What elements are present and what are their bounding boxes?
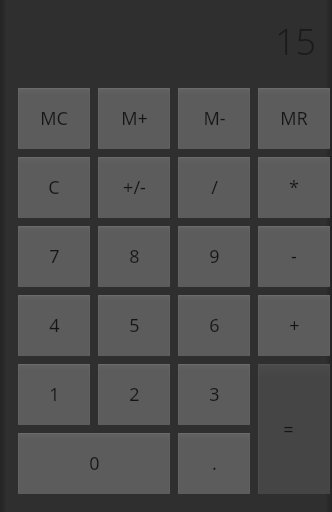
staticText: 9 xyxy=(209,244,220,269)
staticText: MC xyxy=(40,106,68,131)
button[interactable]: * xyxy=(258,157,330,218)
staticText: / xyxy=(211,175,218,200)
staticText: . xyxy=(212,451,217,476)
staticText: M+ xyxy=(121,106,148,131)
button[interactable]: + xyxy=(258,295,330,356)
staticText: 8 xyxy=(129,244,140,269)
staticText: + xyxy=(289,313,300,338)
staticText: 4 xyxy=(49,313,60,338)
button[interactable]: MC xyxy=(18,88,90,149)
button[interactable]: 8 xyxy=(98,226,170,287)
button[interactable]: 6 xyxy=(178,295,250,356)
staticText: MR xyxy=(280,106,308,131)
button[interactable]: M- xyxy=(178,88,250,149)
staticText: = xyxy=(283,417,294,442)
staticText: * xyxy=(289,175,299,200)
staticText: 1 xyxy=(49,382,60,407)
staticText: 7 xyxy=(49,244,60,269)
staticText: 3 xyxy=(209,382,220,407)
staticText: M- xyxy=(203,106,226,131)
button[interactable]: M+ xyxy=(98,88,170,149)
button[interactable]: 1 xyxy=(18,364,90,425)
staticText: +/- xyxy=(123,175,146,200)
button[interactable]: - xyxy=(258,226,330,287)
button[interactable]: C xyxy=(18,157,90,218)
button[interactable]: 9 xyxy=(178,226,250,287)
button[interactable]: 2 xyxy=(98,364,170,425)
button[interactable]: / xyxy=(178,157,250,218)
button[interactable]: 4 xyxy=(18,295,90,356)
button[interactable]: 7 xyxy=(18,226,90,287)
staticText: 5 xyxy=(129,313,140,338)
staticText: 0 xyxy=(89,451,100,476)
staticText: C xyxy=(48,175,60,200)
button[interactable]: +/- xyxy=(98,157,170,218)
staticText: - xyxy=(291,244,297,269)
button[interactable]: MR xyxy=(258,88,330,149)
button[interactable]: 0 xyxy=(18,433,170,494)
staticText: 6 xyxy=(209,313,220,338)
button[interactable]: 5 xyxy=(98,295,170,356)
button[interactable]: 3 xyxy=(178,364,250,425)
staticText: 2 xyxy=(129,382,140,407)
staticText: 15 xyxy=(274,17,316,66)
